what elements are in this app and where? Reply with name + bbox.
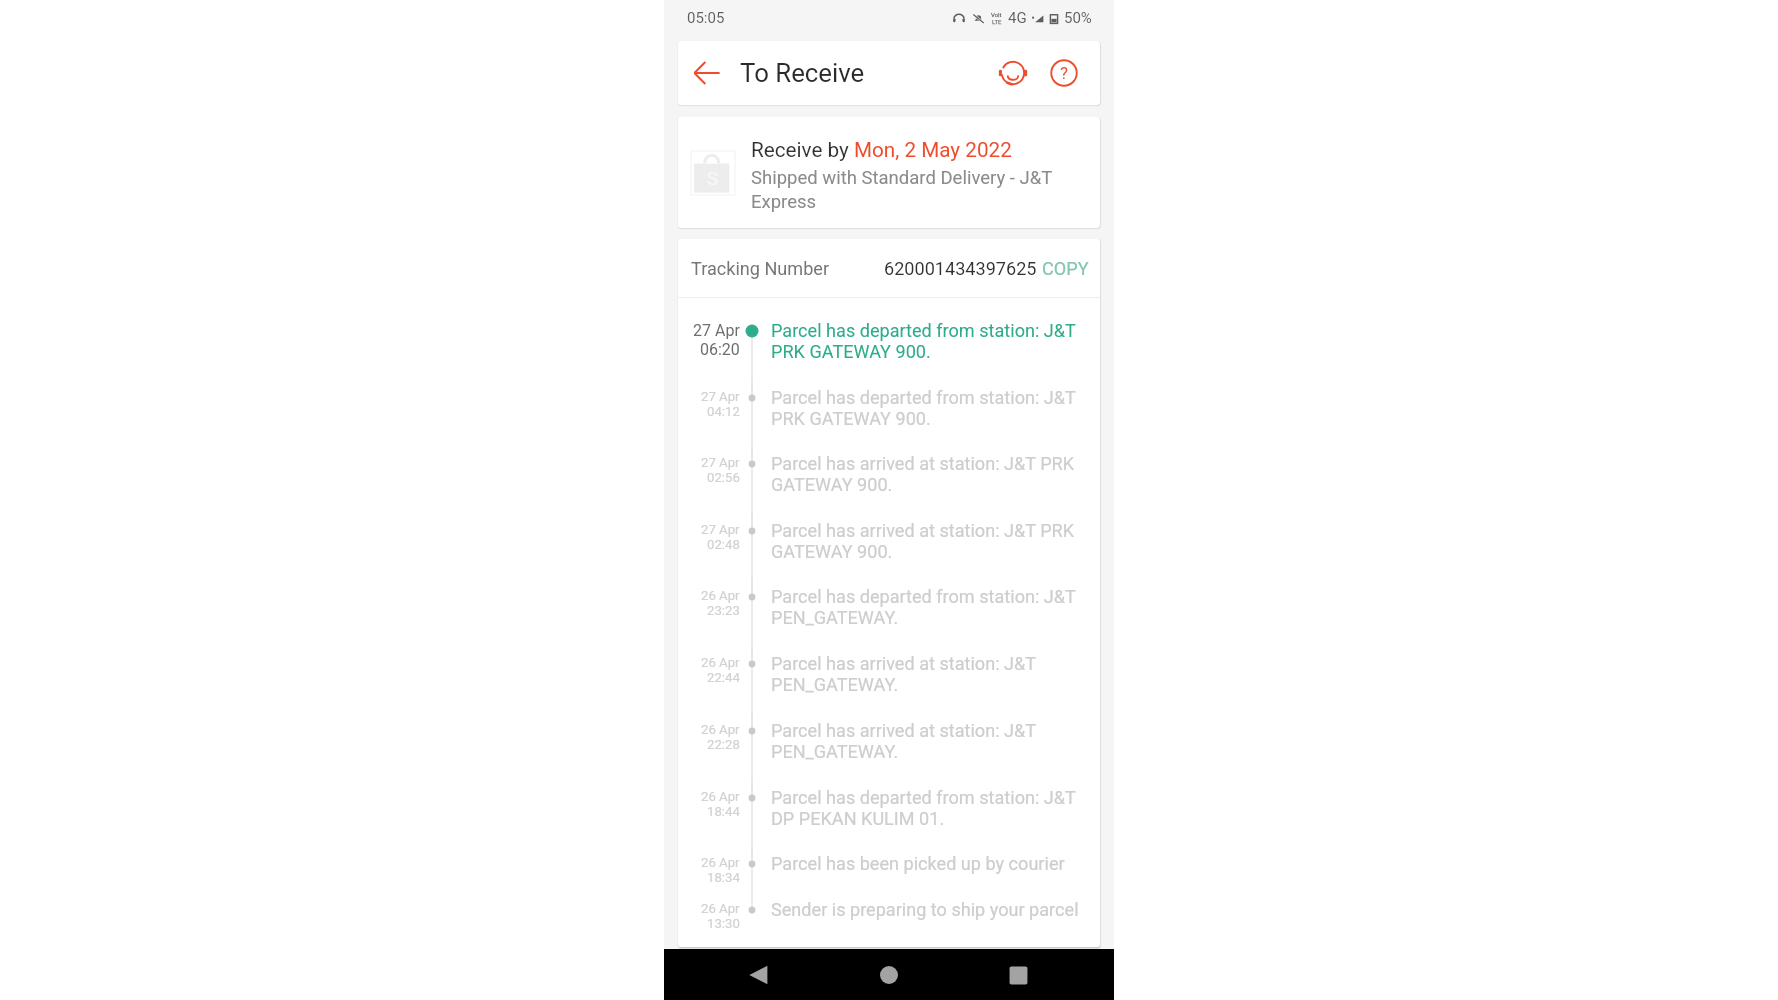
button[interactable]: Recents bbox=[995, 952, 1041, 998]
staticText: PEN_GATEWAY. bbox=[771, 741, 899, 762]
staticText: Parcel has departed from station: J&T bbox=[771, 387, 1076, 408]
staticText: COPY bbox=[1042, 258, 1089, 279]
staticText: Parcel has departed from station: J&T bbox=[771, 787, 1076, 808]
staticText: Parcel has arrived at station: J&T PRK bbox=[771, 453, 1075, 474]
staticText: Parcel has departed from station: J&T bbox=[771, 586, 1076, 607]
staticText: 18:34 bbox=[707, 870, 740, 885]
staticText: 4G bbox=[1008, 9, 1027, 27]
staticText: 22:44 bbox=[707, 670, 740, 685]
staticText: ? bbox=[1060, 63, 1069, 83]
staticText: 27 Apr bbox=[693, 321, 740, 340]
button[interactable]: Customer support bbox=[994, 54, 1032, 92]
staticText: GATEWAY 900. bbox=[771, 474, 893, 495]
staticText: 620001434397625 bbox=[884, 258, 1037, 279]
staticText: 22:28 bbox=[707, 737, 740, 752]
staticText: Parcel has been picked up by courier bbox=[771, 853, 1065, 874]
staticText: 26 Apr bbox=[701, 588, 740, 603]
staticText: Parcel has arrived at station: J&T bbox=[771, 653, 1037, 674]
staticText: 26 Apr bbox=[701, 901, 740, 916]
staticText: 18:44 bbox=[707, 804, 740, 819]
button[interactable]: Back bbox=[736, 952, 782, 998]
staticText: 02:48 bbox=[707, 537, 740, 552]
staticText: DP PEKAN KULIM 01. bbox=[771, 808, 945, 829]
staticText: GATEWAY 900. bbox=[771, 541, 893, 562]
staticText: PRK GATEWAY 900. bbox=[771, 341, 931, 362]
staticText: Shipped with Standard Delivery - J&T Exp… bbox=[751, 167, 1090, 212]
staticText: Volt bbox=[991, 11, 1002, 18]
staticText: PEN_GATEWAY. bbox=[771, 607, 899, 628]
staticText: PRK GATEWAY 900. bbox=[771, 408, 931, 429]
staticText: 13:30 bbox=[707, 916, 740, 931]
staticText: Parcel has arrived at station: J&T PRK bbox=[771, 520, 1075, 541]
staticText: 05:05 bbox=[687, 9, 725, 27]
staticText: Parcel has departed from station: J&T bbox=[771, 320, 1076, 341]
staticText: S bbox=[707, 167, 719, 189]
staticText: Sender is preparing to ship your parcel bbox=[771, 899, 1079, 920]
button[interactable]: Back bbox=[689, 55, 725, 91]
button[interactable]: S bbox=[678, 117, 1100, 228]
staticText: 02:56 bbox=[707, 470, 740, 485]
staticText: 27 Apr bbox=[701, 522, 740, 537]
staticText: 23:23 bbox=[707, 603, 740, 618]
staticText: LTE bbox=[992, 18, 1002, 25]
staticText: 27 Apr bbox=[701, 389, 740, 404]
staticText: Parcel has arrived at station: J&T bbox=[771, 720, 1037, 741]
staticText: 26 Apr bbox=[701, 722, 740, 737]
staticText: PEN_GATEWAY. bbox=[771, 674, 899, 695]
staticText: 06:20 bbox=[700, 340, 740, 359]
staticText: Tracking Number bbox=[691, 258, 830, 279]
staticText: To Receive bbox=[740, 58, 865, 88]
button[interactable]: Help bbox=[1045, 54, 1083, 92]
staticText: 26 Apr bbox=[701, 789, 740, 804]
staticText: 50% bbox=[1064, 9, 1092, 27]
staticText: 27 Apr bbox=[701, 455, 740, 470]
staticText: 26 Apr bbox=[701, 855, 740, 870]
button[interactable]: Home bbox=[866, 952, 912, 998]
staticText: Receive by Mon, 2 May 2022 bbox=[751, 138, 1012, 162]
button[interactable]: Tracking Number bbox=[678, 239, 1100, 297]
staticText: 04:12 bbox=[707, 404, 740, 419]
staticText: 26 Apr bbox=[701, 655, 740, 670]
